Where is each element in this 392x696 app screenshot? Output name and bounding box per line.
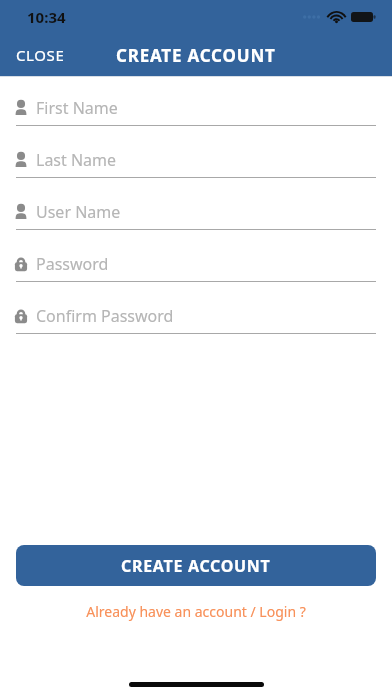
button[interactable]: User Name <box>0 194 392 246</box>
button[interactable]: First Name <box>0 90 392 142</box>
staticText: Password <box>36 253 109 275</box>
button[interactable]: Confirm Password <box>0 298 392 350</box>
button[interactable]: Last Name <box>0 142 392 194</box>
staticText: Confirm Password <box>36 305 174 327</box>
staticText: CREATE ACCOUNT <box>116 44 276 67</box>
button[interactable]: Password <box>0 246 392 298</box>
staticText: 10:34 <box>27 7 66 27</box>
staticText: Already have an account / Login ? <box>86 602 306 621</box>
staticText: Last Name <box>36 149 117 171</box>
staticText: First Name <box>36 97 118 119</box>
button[interactable]: CREATE ACCOUNT <box>16 545 376 586</box>
staticText: CLOSE <box>16 45 65 65</box>
staticText: User Name <box>36 201 121 223</box>
button[interactable]: CLOSE <box>0 39 77 71</box>
staticText: CREATE ACCOUNT <box>121 555 271 577</box>
button[interactable]: Already have an account / Login ? <box>0 598 392 625</box>
